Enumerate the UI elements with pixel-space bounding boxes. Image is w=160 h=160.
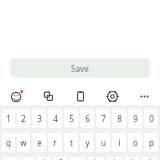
staticText: 7 — [101, 113, 106, 124]
button[interactable]: Save — [10, 58, 150, 78]
button[interactable]: 1 — [2, 109, 15, 128]
staticText: l — [149, 157, 152, 160]
button[interactable]: w — [17, 133, 30, 152]
staticText: i — [118, 137, 121, 148]
button[interactable]: 8 — [112, 109, 126, 128]
staticText: 9 — [133, 113, 138, 124]
staticText: 0 — [149, 113, 154, 124]
button[interactable]: 5 — [64, 109, 78, 128]
button[interactable]: 0 — [144, 109, 158, 128]
staticText: q — [6, 137, 11, 148]
staticText: e — [37, 137, 42, 148]
button[interactable]: Stickers — [32, 87, 64, 105]
staticText: r — [53, 137, 57, 148]
button[interactable]: k — [124, 157, 140, 160]
staticText: d — [41, 157, 46, 160]
staticText: w — [20, 137, 27, 148]
staticText: y — [85, 137, 90, 148]
button[interactable]: y — [80, 133, 94, 152]
staticText: t — [70, 137, 73, 148]
staticText: Save — [71, 63, 89, 74]
staticText: 6 — [85, 113, 90, 124]
button[interactable]: 6 — [80, 109, 94, 128]
button[interactable]: j — [106, 157, 122, 160]
button[interactable]: i — [112, 133, 126, 152]
button[interactable]: o — [128, 133, 142, 152]
staticText: 3 — [37, 113, 42, 124]
button[interactable]: t — [64, 133, 78, 152]
button[interactable]: q — [2, 133, 15, 152]
staticText: 8 — [117, 113, 122, 124]
staticText: p — [149, 137, 154, 148]
staticText: 1 — [6, 113, 11, 124]
button[interactable]: Settings — [96, 87, 128, 105]
button[interactable]: p — [144, 133, 158, 152]
button[interactable]: More options — [128, 87, 160, 105]
button[interactable]: r — [48, 133, 62, 152]
staticText: 2 — [21, 113, 26, 124]
button[interactable]: 9 — [128, 109, 142, 128]
staticText: f — [59, 157, 62, 160]
button[interactable]: d — [36, 157, 51, 160]
button[interactable]: 3 — [32, 109, 46, 128]
button[interactable]: 2 — [17, 109, 30, 128]
staticText: o — [133, 137, 138, 148]
button[interactable]: e — [32, 133, 46, 152]
button[interactable]: 7 — [96, 109, 110, 128]
staticText: u — [101, 137, 106, 148]
staticText: 4 — [53, 113, 58, 124]
button[interactable]: u — [96, 133, 110, 152]
button[interactable]: Clipboard — [64, 87, 96, 105]
staticText: 5 — [69, 113, 74, 124]
button[interactable]: l — [142, 157, 158, 160]
button[interactable]: h — [88, 157, 104, 160]
button[interactable]: 4 — [48, 109, 62, 128]
staticText: h — [94, 157, 99, 160]
button[interactable]: f — [53, 157, 68, 160]
staticText: j — [113, 157, 116, 160]
staticText: k — [130, 157, 135, 160]
button[interactable]: Emoji — [0, 87, 32, 105]
